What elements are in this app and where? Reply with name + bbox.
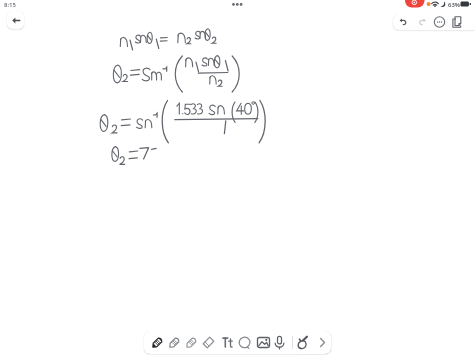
button[interactable]: Pages [450,14,468,30]
button[interactable]: Insert image [255,331,272,354]
button[interactable]: Pencil [166,331,183,354]
button[interactable]: Lasso [236,331,253,354]
button[interactable]: Highlighter [183,331,200,354]
staticText: 63% [448,1,461,9]
button[interactable]: More tools [314,331,331,354]
button[interactable]: Pen [149,331,166,354]
button[interactable]: Text [219,331,236,354]
staticText: 8:15 [4,1,16,9]
button[interactable]: Record audio [271,331,288,354]
button[interactable]: Colour [294,331,311,354]
button[interactable]: More options [433,14,450,30]
button[interactable]: Undo [393,14,414,30]
button[interactable]: Redo [414,14,433,30]
button[interactable]: Back [7,11,24,29]
button[interactable]: Eraser [200,331,217,354]
